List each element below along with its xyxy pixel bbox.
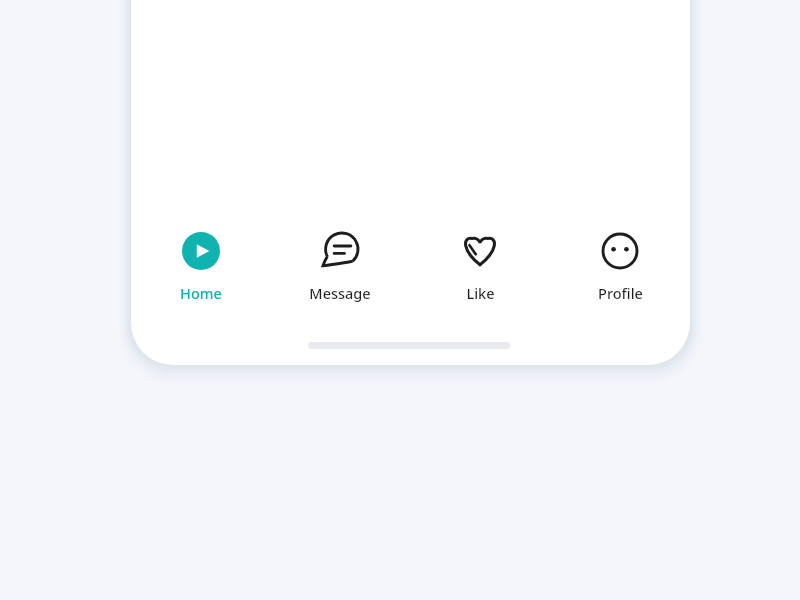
staticText: Profile (598, 283, 643, 303)
button[interactable]: Like (410, 228, 550, 294)
button[interactable]: Home (131, 228, 270, 294)
staticText: Message (309, 283, 371, 303)
staticText: Like (466, 283, 495, 303)
button[interactable]: Message (270, 228, 410, 294)
button[interactable]: Profile (550, 228, 690, 294)
staticText: Home (180, 283, 222, 303)
